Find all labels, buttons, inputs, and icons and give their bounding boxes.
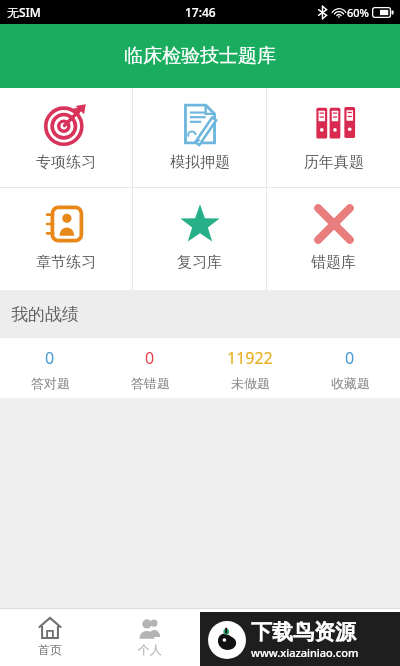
staticText: 11922 <box>227 347 273 369</box>
button[interactable]: 0 <box>300 338 400 398</box>
staticText: 临床检验技士题库 <box>124 44 276 68</box>
button[interactable]: 专项练习 <box>0 88 132 187</box>
staticText: 未做题 <box>231 375 270 391</box>
staticText: 个人 <box>138 642 162 657</box>
button[interactable]: 0 <box>100 338 200 398</box>
staticText: 历年真题 <box>304 153 364 172</box>
staticText: 无SIM <box>7 4 41 20</box>
staticText: 模拟押题 <box>170 153 230 172</box>
staticText: 0 <box>145 347 155 369</box>
staticText: 专项练习 <box>36 153 96 172</box>
button[interactable]: 章节练习 <box>0 188 132 290</box>
staticText: 复习库 <box>177 253 222 272</box>
staticText: 0 <box>45 347 55 369</box>
staticText: 章节练习 <box>36 253 96 272</box>
button[interactable]: 模拟押题 <box>133 88 266 187</box>
button[interactable]: 首页 <box>0 609 100 666</box>
staticText: 错题库 <box>311 253 356 272</box>
staticText: 下载鸟资源 <box>251 619 356 645</box>
button[interactable]: 11922 <box>200 338 300 398</box>
button[interactable]: 错题库 <box>267 188 400 290</box>
button[interactable]: 复习库 <box>133 188 266 290</box>
button[interactable]: 个人 <box>100 609 200 666</box>
staticText: 60% <box>347 5 369 20</box>
button[interactable]: 历年真题 <box>267 88 400 187</box>
staticText: 首页 <box>38 642 62 657</box>
staticText: 17:46 <box>185 4 216 20</box>
button[interactable]: 0 <box>0 338 100 398</box>
staticText: 收藏题 <box>331 375 370 391</box>
staticText: 答错题 <box>131 375 170 391</box>
staticText: www.xiazainiao.com <box>251 645 359 660</box>
staticText: 我的战绩 <box>11 304 79 325</box>
staticText: 答对题 <box>31 375 70 391</box>
staticText: 0 <box>345 347 355 369</box>
